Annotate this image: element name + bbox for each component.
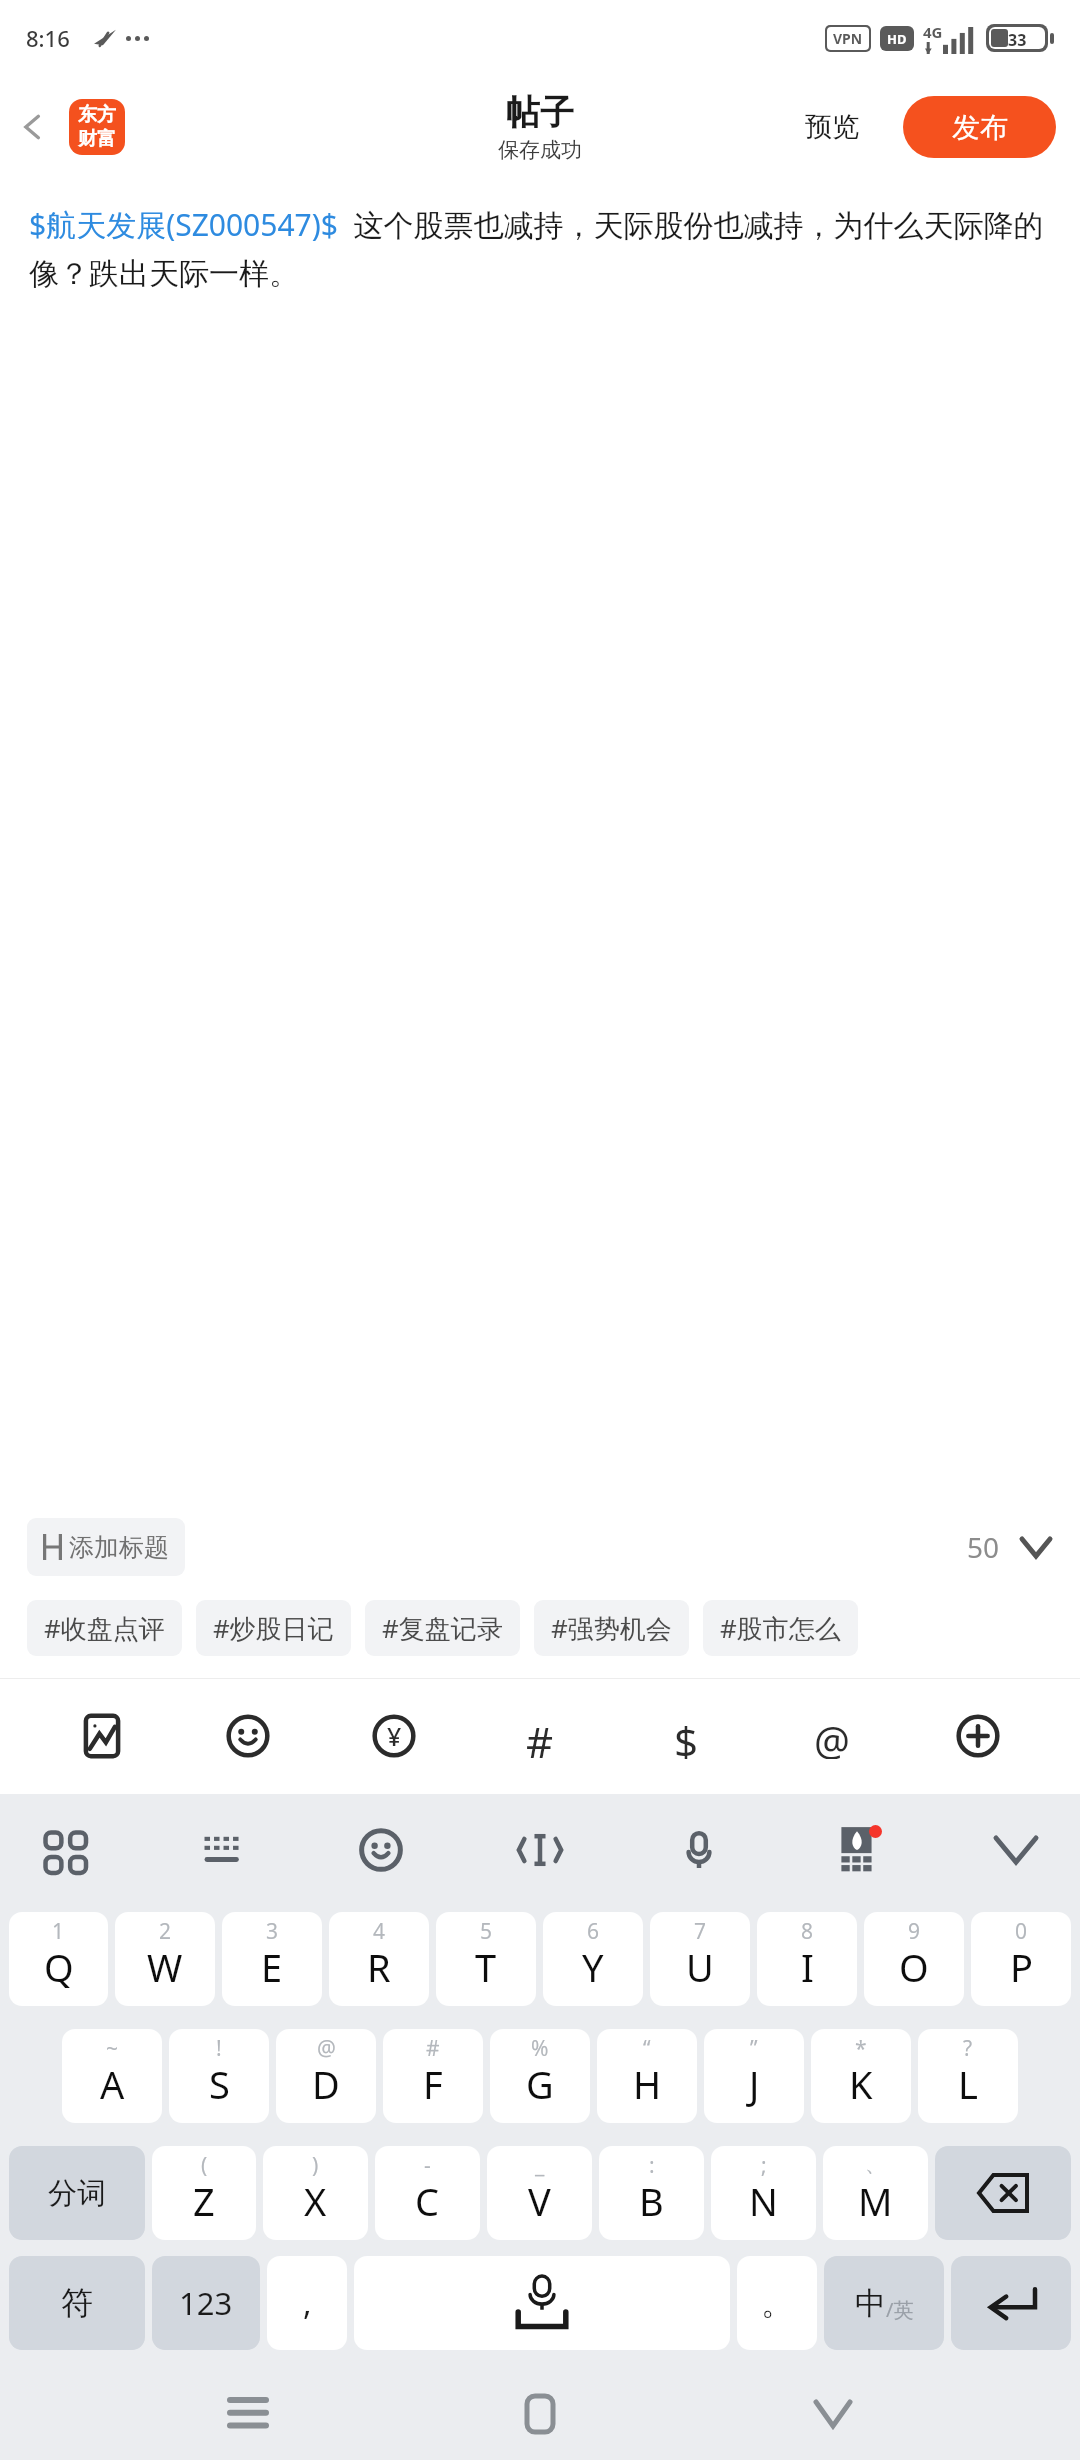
staticText: 4G xyxy=(923,22,943,42)
staticText: L xyxy=(958,2058,978,2110)
button[interactable]: Keyboard layout xyxy=(181,1808,265,1892)
button[interactable]: #股市怎么 xyxy=(703,1600,858,1656)
button[interactable]: #收盘点评 xyxy=(27,1600,182,1656)
button[interactable]: Yuan xyxy=(350,1692,438,1780)
staticText: ! xyxy=(216,2034,222,2063)
button[interactable]: Backspace xyxy=(935,2146,1071,2240)
staticText: #复盘记录 xyxy=(382,1610,503,1646)
staticText: C xyxy=(415,2175,440,2227)
button[interactable]: 中 xyxy=(824,2256,944,2350)
button[interactable]: % xyxy=(490,2029,590,2123)
button[interactable]: 。 xyxy=(737,2256,817,2350)
button[interactable]: ~ xyxy=(62,2029,162,2123)
staticText: I xyxy=(801,1941,814,1993)
button[interactable]: 1 xyxy=(9,1912,108,2006)
staticText: 5 xyxy=(480,1917,493,1946)
button[interactable]: 4 xyxy=(329,1912,429,2006)
staticText: 、 xyxy=(865,2151,886,2177)
button[interactable]: 、 xyxy=(823,2146,928,2240)
staticText: 4 xyxy=(373,1917,386,1946)
staticText: T xyxy=(475,1941,497,1993)
button[interactable]: Word count xyxy=(961,1522,1056,1572)
button[interactable]: ) xyxy=(263,2146,368,2240)
button[interactable]: 6 xyxy=(543,1912,643,2006)
staticText: H xyxy=(633,2058,662,2110)
staticText: P xyxy=(1010,1941,1033,1993)
staticText: ( xyxy=(201,2151,208,2180)
button[interactable]: Image xyxy=(58,1692,146,1780)
button[interactable]: ? xyxy=(918,2029,1018,2123)
button[interactable]: Theme xyxy=(815,1808,899,1892)
staticText: HD xyxy=(887,30,907,48)
button[interactable]: Home xyxy=(495,2369,585,2459)
button[interactable]: Cursor xyxy=(498,1808,582,1892)
staticText: 9 xyxy=(908,1917,921,1946)
button[interactable]: East Money xyxy=(69,99,125,155)
button[interactable]: Mention xyxy=(788,1692,876,1780)
staticText: VPN xyxy=(833,29,863,48)
button[interactable]: #复盘记录 xyxy=(365,1600,520,1656)
staticText: ¥ xyxy=(387,1719,402,1753)
button[interactable]: #炒股日记 xyxy=(196,1600,351,1656)
staticText: D xyxy=(312,2058,340,2110)
button[interactable]: Emoji xyxy=(204,1692,292,1780)
staticText: 33 xyxy=(1008,29,1027,47)
button[interactable]: Voice xyxy=(657,1808,741,1892)
button[interactable]: Back xyxy=(788,2369,878,2459)
staticText: 50 xyxy=(967,1528,1000,1566)
staticText: B xyxy=(639,2175,664,2227)
staticText: $航天发展(SZ000547)$ 这个股票也减持，天际股份也减持，为什么天际降的… xyxy=(29,204,1054,293)
staticText: “ xyxy=(643,2034,651,2063)
button[interactable]: # xyxy=(383,2029,483,2123)
button[interactable]: Hide keyboard xyxy=(974,1808,1058,1892)
button[interactable]: 8 xyxy=(757,1912,857,2006)
button[interactable]: , xyxy=(267,2256,347,2350)
button[interactable]: ! xyxy=(169,2029,269,2123)
button[interactable]: ; xyxy=(711,2146,816,2240)
staticText: 2 xyxy=(159,1917,172,1946)
staticText: * xyxy=(855,2034,867,2063)
staticText: M xyxy=(858,2175,893,2227)
button[interactable]: Apps xyxy=(22,1808,106,1892)
button[interactable]: Space xyxy=(354,2256,730,2350)
button[interactable]: ( xyxy=(152,2146,256,2240)
button[interactable]: 5 xyxy=(436,1912,536,2006)
button[interactable]: 9 xyxy=(864,1912,964,2006)
staticText: 符 xyxy=(61,2283,93,2323)
staticText: 东方 xyxy=(78,103,116,127)
button[interactable]: 添加标题 xyxy=(27,1518,185,1576)
staticText: # xyxy=(426,2034,440,2063)
staticText: $ xyxy=(674,1713,699,1759)
button[interactable]: More xyxy=(934,1692,1022,1780)
button[interactable]: : xyxy=(599,2146,704,2240)
button[interactable]: Topic xyxy=(496,1692,584,1780)
button[interactable]: #强势机会 xyxy=(534,1600,689,1656)
button[interactable]: “ xyxy=(597,2029,697,2123)
button[interactable]: Recents xyxy=(203,2369,293,2459)
button[interactable]: ” xyxy=(704,2029,804,2123)
staticText: ? xyxy=(963,2034,973,2063)
button[interactable]: @ xyxy=(276,2029,376,2123)
staticText: : xyxy=(649,2151,655,2180)
button[interactable]: 发布 xyxy=(903,96,1056,158)
staticText: - xyxy=(424,2151,431,2180)
staticText: ~ xyxy=(106,2034,119,2063)
button[interactable]: 0 xyxy=(971,1912,1071,2006)
button[interactable]: 分词 xyxy=(9,2146,145,2240)
button[interactable]: 2 xyxy=(115,1912,215,2006)
button[interactable]: 符 xyxy=(9,2256,145,2350)
button[interactable]: 7 xyxy=(650,1912,750,2006)
button[interactable]: 预览 xyxy=(799,102,865,152)
button[interactable]: 123 xyxy=(152,2256,260,2350)
button[interactable]: _ xyxy=(487,2146,592,2240)
staticText: 8:16 xyxy=(26,23,70,53)
staticText: Y xyxy=(582,1941,604,1993)
button[interactable]: Enter xyxy=(951,2256,1071,2350)
button[interactable]: 3 xyxy=(222,1912,322,2006)
staticText: _ xyxy=(535,2151,545,2180)
button[interactable]: - xyxy=(375,2146,480,2240)
button[interactable]: Emoji xyxy=(339,1808,423,1892)
button[interactable]: * xyxy=(811,2029,911,2123)
button[interactable]: Back xyxy=(8,102,58,152)
button[interactable]: Stock xyxy=(642,1692,730,1780)
